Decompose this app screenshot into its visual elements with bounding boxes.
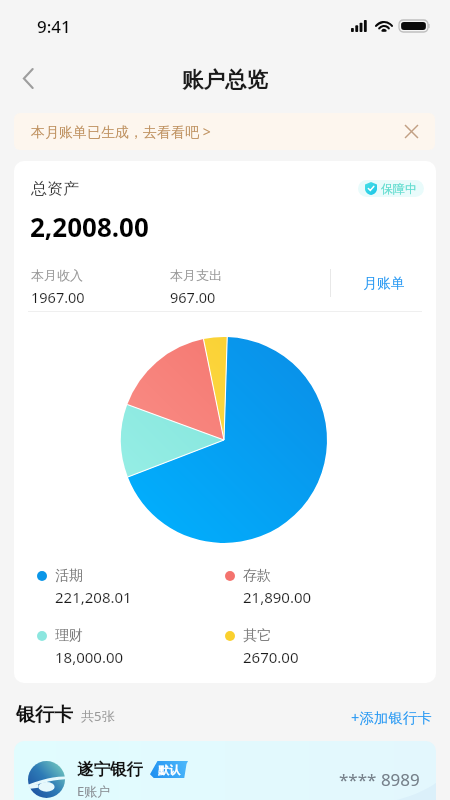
staticText: 遂宁银行 xyxy=(77,759,143,780)
staticText: 默认 xyxy=(158,763,180,777)
staticText: 月账单 xyxy=(363,275,405,293)
staticText: 存款 xyxy=(243,567,271,585)
staticText: 总资产 xyxy=(31,179,79,199)
staticText: 221,208.01 xyxy=(55,587,132,607)
staticText: 账户总览 xyxy=(182,66,268,93)
staticText: 本月收入 xyxy=(31,267,83,283)
button[interactable]: 保障中 xyxy=(358,180,424,197)
staticText: 2670.00 xyxy=(243,647,299,667)
staticText: 本月账单已生成，去看看吧 > xyxy=(31,122,211,141)
staticText: 2,2008.00 xyxy=(30,209,149,244)
button[interactable]: Back xyxy=(5,55,51,101)
staticText: 本月支出 xyxy=(170,267,222,283)
staticText: 21,890.00 xyxy=(243,587,312,607)
staticText: 保障中 xyxy=(381,181,417,196)
staticText: 理财 xyxy=(55,627,83,645)
button[interactable]: +添加银行卡 xyxy=(349,703,434,731)
button[interactable]: Close banner xyxy=(393,113,430,150)
staticText: 银行卡 xyxy=(16,703,73,727)
staticText: E账户 xyxy=(77,782,111,800)
staticText: 18,000.00 xyxy=(55,647,124,667)
staticText: 967.00 xyxy=(170,287,216,307)
staticText: 共5张 xyxy=(81,707,115,725)
button[interactable]: 月账单 xyxy=(355,267,413,301)
button[interactable]: 本月账单已生成，去看看吧 > xyxy=(14,113,435,150)
staticText: 1967.00 xyxy=(31,287,85,307)
staticText: **** 8989 xyxy=(339,768,420,791)
staticText: +添加银行卡 xyxy=(351,707,432,727)
staticText: 活期 xyxy=(55,567,83,585)
button[interactable]: 遂宁银行 xyxy=(14,741,436,800)
staticText: 其它 xyxy=(243,627,271,645)
staticText: 9:41 xyxy=(37,15,71,38)
